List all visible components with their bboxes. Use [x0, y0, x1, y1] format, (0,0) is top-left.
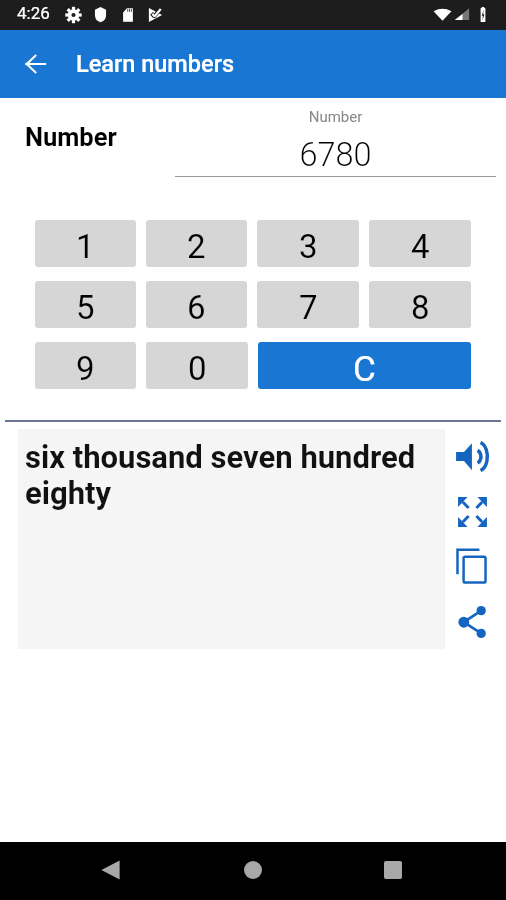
staticText: 6780 [175, 136, 496, 174]
staticText: 5 [76, 288, 95, 327]
button[interactable]: 8 [369, 281, 471, 328]
button[interactable]: Navigate up [7, 36, 63, 92]
staticText: Number [25, 122, 117, 152]
button[interactable]: 4 [369, 220, 471, 267]
staticText: 0 [188, 349, 207, 388]
button[interactable]: Share [449, 596, 496, 647]
staticText: C [353, 349, 376, 389]
staticText: 7 [299, 288, 318, 327]
button[interactable]: 3 [257, 220, 359, 267]
staticText: six thousand seven hundred eighty [25, 439, 433, 511]
staticText: 2 [187, 227, 206, 266]
button[interactable]: Copy [447, 540, 496, 593]
staticText: 1 [76, 227, 95, 266]
staticText: 6 [187, 288, 206, 327]
button[interactable]: 9 [35, 342, 136, 389]
button[interactable]: six thousand seven hundred eighty [18, 429, 445, 649]
staticText: Number [175, 108, 496, 126]
staticText: 3 [299, 227, 318, 266]
button[interactable]: Recent apps [364, 842, 422, 900]
staticText: 8 [411, 288, 430, 327]
button[interactable]: 7 [257, 281, 359, 328]
button[interactable]: Back [81, 842, 139, 900]
button[interactable]: C [258, 342, 471, 389]
button[interactable]: 6 [146, 281, 247, 328]
button[interactable]: 1 [35, 220, 136, 267]
button[interactable]: 2 [146, 220, 247, 267]
staticText: Learn numbers [76, 50, 235, 78]
button[interactable]: Fullscreen [449, 488, 496, 536]
button[interactable]: Home [224, 842, 282, 900]
button[interactable]: Listen [447, 431, 499, 482]
button[interactable]: 5 [35, 281, 136, 328]
staticText: 4:26 [17, 3, 50, 23]
button[interactable]: 0 [146, 342, 248, 389]
staticText: 4 [411, 227, 430, 266]
staticText: 9 [76, 349, 95, 388]
